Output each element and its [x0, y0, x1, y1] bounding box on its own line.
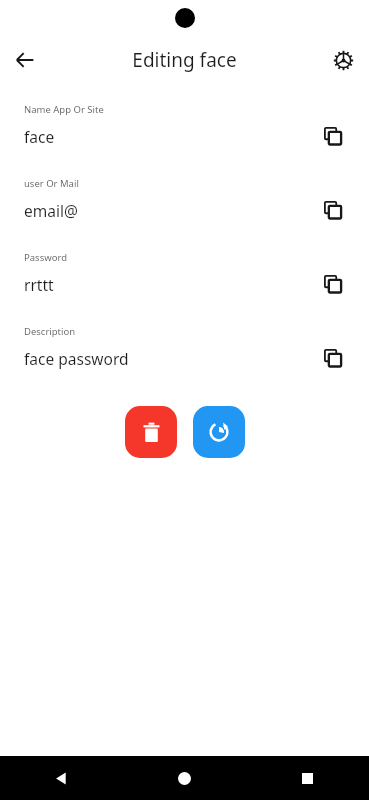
button[interactable]: Navigate back: [5, 40, 45, 80]
button[interactable]: Recent apps: [246, 756, 369, 800]
staticText: face: [24, 126, 316, 147]
staticText: Name App Or Site: [24, 103, 104, 116]
staticText: Password: [24, 251, 67, 264]
button[interactable]: Settings: [323, 40, 363, 80]
button[interactable]: Back: [0, 756, 123, 800]
staticText: email@: [24, 200, 316, 221]
staticText: Description: [24, 325, 76, 338]
button[interactable]: Restore: [193, 406, 245, 458]
staticText: user Or Mail: [24, 177, 79, 190]
button[interactable]: Copy Password: [316, 267, 350, 301]
button[interactable]: Copy user Or Mail: [316, 193, 350, 227]
staticText: Editing face: [132, 47, 237, 73]
button[interactable]: Copy Name App Or Site: [316, 119, 350, 153]
button[interactable]: Home: [123, 756, 246, 800]
button[interactable]: Copy Description: [316, 341, 350, 375]
staticText: rrttt: [24, 274, 316, 295]
staticText: face password: [24, 348, 316, 369]
button[interactable]: Delete: [125, 406, 177, 458]
